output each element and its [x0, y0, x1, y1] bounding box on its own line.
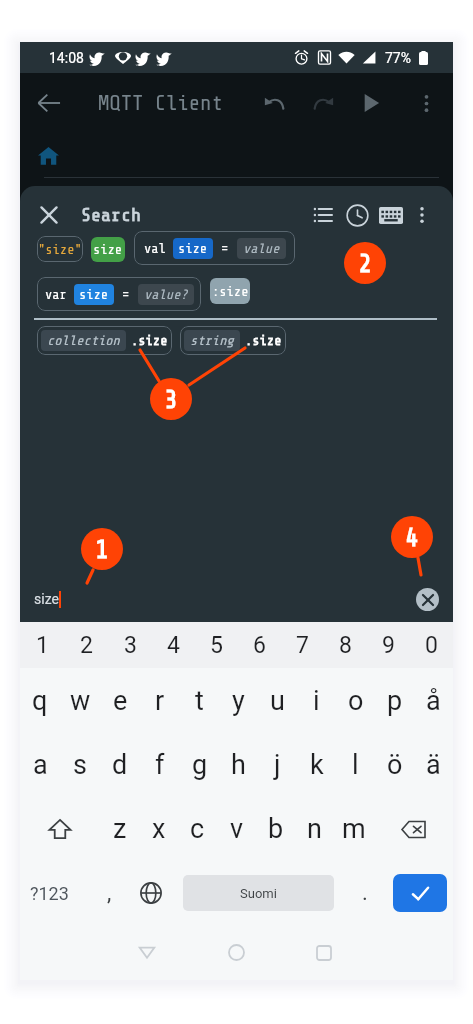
button[interactable]: p	[375, 668, 414, 733]
button[interactable]: n	[295, 797, 334, 861]
button[interactable]: Shift	[20, 797, 100, 861]
staticText: q	[32, 685, 48, 717]
staticText: size	[93, 242, 123, 257]
button[interactable]: k	[297, 733, 336, 797]
staticText: i	[313, 685, 320, 717]
button[interactable]: e	[100, 668, 140, 733]
staticText: x	[152, 813, 166, 845]
button[interactable]: å	[414, 668, 453, 733]
staticText: 14:08	[49, 50, 84, 66]
button[interactable]: Recent apps	[302, 925, 346, 980]
button[interactable]: Close	[32, 198, 66, 232]
staticText: ?123	[30, 883, 69, 904]
button[interactable]: s	[60, 733, 100, 797]
staticText: ä	[426, 749, 441, 781]
button[interactable]: More options	[405, 198, 439, 232]
button[interactable]: h	[219, 733, 258, 797]
button[interactable]: 6	[238, 622, 281, 668]
button[interactable]: f	[140, 733, 180, 797]
button[interactable]: Run	[348, 73, 394, 133]
staticText: string	[190, 333, 234, 348]
staticText: =	[122, 287, 130, 302]
button[interactable]: u	[258, 668, 297, 733]
button[interactable]: i	[297, 668, 336, 733]
button[interactable]: collection	[37, 326, 172, 355]
staticText: d	[112, 749, 128, 781]
button[interactable]: l	[336, 733, 375, 797]
button[interactable]: string	[180, 326, 286, 355]
staticText: 0	[425, 632, 438, 659]
button[interactable]: Suomi	[183, 875, 334, 911]
button[interactable]: 9	[367, 622, 410, 668]
button[interactable]: Home	[214, 925, 258, 980]
button[interactable]: 4	[152, 622, 195, 668]
button[interactable]: ö	[375, 733, 414, 797]
staticText: collection	[47, 333, 120, 348]
button[interactable]: ,	[86, 861, 132, 925]
button[interactable]: b	[256, 797, 295, 861]
button[interactable]: Back	[125, 925, 169, 980]
button[interactable]: Enter	[393, 874, 447, 912]
staticText: 77%	[385, 50, 411, 66]
staticText: .size	[245, 333, 282, 348]
staticText: value	[243, 241, 280, 256]
button[interactable]: Back	[26, 73, 72, 133]
button[interactable]: var	[37, 277, 201, 311]
staticText: size	[79, 287, 109, 302]
button[interactable]: Home	[20, 133, 76, 177]
button[interactable]: History	[340, 198, 374, 232]
button[interactable]: 7	[281, 622, 324, 668]
button[interactable]: Change language	[131, 861, 171, 925]
staticText: size	[34, 591, 59, 607]
button[interactable]: w	[60, 668, 100, 733]
staticText: 2	[358, 249, 373, 278]
button[interactable]: j	[258, 733, 297, 797]
button[interactable]: o	[336, 668, 375, 733]
staticText: c	[190, 813, 205, 845]
button[interactable]: Backspace	[373, 797, 453, 861]
button[interactable]: :size	[210, 278, 250, 304]
staticText: 9	[382, 632, 395, 659]
button[interactable]: 2	[64, 622, 108, 668]
button[interactable]: ?123	[20, 861, 78, 925]
button[interactable]: q	[20, 668, 60, 733]
button[interactable]: ä	[414, 733, 453, 797]
staticText: r	[155, 685, 165, 717]
button[interactable]: "size"	[37, 236, 83, 262]
button[interactable]: v	[217, 797, 256, 861]
button[interactable]: y	[219, 668, 258, 733]
button[interactable]: 1	[20, 622, 64, 668]
button[interactable]: Keyboard	[374, 198, 408, 232]
button[interactable]: z	[100, 797, 139, 861]
button[interactable]: c	[178, 797, 217, 861]
button[interactable]: Redo	[300, 73, 346, 133]
button[interactable]: 3	[108, 622, 152, 668]
staticText: var	[45, 287, 67, 302]
staticText: s	[73, 749, 87, 781]
button[interactable]: Clear	[416, 588, 439, 611]
staticText: .size	[131, 333, 168, 348]
button[interactable]: r	[140, 668, 180, 733]
button[interactable]: Undo	[252, 73, 298, 133]
staticText: z	[113, 813, 127, 845]
staticText: 1	[95, 535, 110, 564]
button[interactable]: 5	[195, 622, 238, 668]
button[interactable]: val	[134, 231, 295, 265]
staticText: .	[362, 880, 368, 906]
staticText: val	[144, 241, 166, 256]
button[interactable]: 8	[324, 622, 367, 668]
staticText: k	[310, 749, 324, 781]
button[interactable]: More options	[405, 73, 447, 133]
button[interactable]: 0	[410, 622, 453, 668]
button[interactable]: g	[180, 733, 219, 797]
button[interactable]: List	[306, 198, 340, 232]
button[interactable]: x	[139, 797, 178, 861]
button[interactable]: size	[91, 237, 125, 262]
button[interactable]: m	[334, 797, 373, 861]
staticText: l	[352, 749, 359, 781]
button[interactable]: d	[100, 733, 140, 797]
staticText: u	[270, 685, 285, 717]
button[interactable]: .	[345, 861, 385, 925]
button[interactable]: t	[180, 668, 219, 733]
button[interactable]: a	[20, 733, 60, 797]
